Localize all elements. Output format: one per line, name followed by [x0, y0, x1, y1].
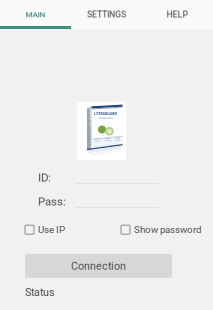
staticText: LITE MANAGER: [80, 115, 103, 119]
staticText: ID:: [38, 171, 51, 184]
button[interactable]: Use IP: [25, 224, 65, 235]
button[interactable]: HELP: [142, 0, 213, 29]
button[interactable]: MAIN: [0, 0, 71, 29]
button[interactable]: Show password: [121, 224, 201, 235]
staticText: Show password: [134, 224, 201, 235]
staticText: Use IP: [38, 224, 65, 235]
button[interactable]: Connection: [25, 254, 172, 278]
staticText: Status: [25, 286, 55, 298]
staticText: Connection: [71, 260, 126, 272]
staticText: MAIN: [25, 10, 45, 19]
staticText: HELP: [166, 9, 188, 20]
staticText: SETTINGS: [87, 9, 126, 20]
staticText: Pass:: [38, 195, 66, 208]
button[interactable]: SETTINGS: [71, 0, 142, 29]
staticText: LITEMANAGER: [94, 112, 117, 116]
